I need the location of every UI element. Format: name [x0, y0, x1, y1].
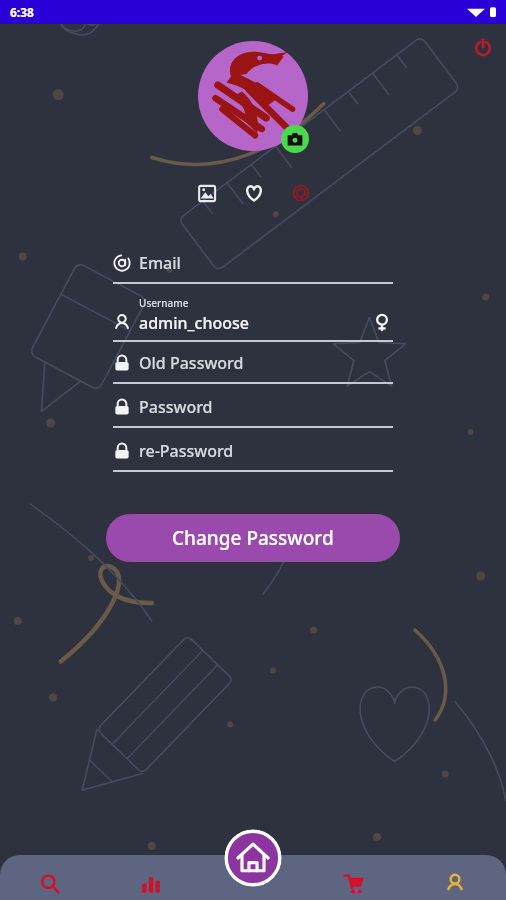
staticText: Email — [139, 252, 181, 274]
button[interactable]: Cart — [334, 864, 374, 900]
staticText: Old Password — [139, 352, 244, 374]
button[interactable]: re-Password — [113, 440, 393, 472]
button[interactable]: Photos — [194, 180, 220, 206]
button[interactable]: Change photo — [281, 125, 309, 153]
button[interactable]: Statistics — [131, 864, 171, 900]
staticText: 6:38 — [10, 4, 34, 20]
button[interactable]: Change Password — [106, 514, 400, 562]
button[interactable]: Password — [113, 396, 393, 428]
staticText: Username — [139, 296, 189, 310]
button[interactable]: Favourites — [241, 180, 267, 206]
staticText: re-Password — [139, 440, 234, 462]
button[interactable]: Search — [30, 864, 70, 900]
button[interactable]: Profile — [435, 864, 475, 900]
button[interactable]: Home — [224, 829, 282, 887]
button[interactable]: Username — [113, 296, 393, 342]
button[interactable]: Old Password — [113, 352, 393, 384]
button[interactable]: Email — [113, 252, 393, 284]
button[interactable]: Log out — [466, 30, 500, 64]
button[interactable]: Gender — [371, 312, 393, 334]
staticText: Password — [139, 396, 213, 418]
button[interactable]: Badge — [288, 180, 314, 206]
staticText: admin_choose — [139, 312, 249, 334]
staticText: Change Password — [172, 525, 334, 551]
